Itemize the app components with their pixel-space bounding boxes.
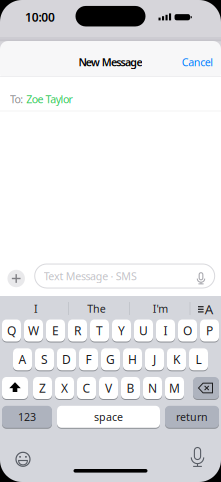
staticText: K bbox=[173, 351, 180, 367]
staticText: T bbox=[96, 322, 103, 338]
button[interactable]: return bbox=[165, 405, 219, 429]
button[interactable] bbox=[190, 269, 212, 293]
staticText: The bbox=[87, 301, 106, 316]
staticText: E bbox=[52, 322, 59, 338]
button[interactable]: H bbox=[123, 347, 142, 371]
staticText: Z bbox=[39, 380, 46, 396]
staticText: I bbox=[163, 322, 167, 338]
button[interactable]: C bbox=[77, 376, 96, 400]
staticText: O bbox=[183, 322, 192, 338]
button[interactable]: K bbox=[167, 347, 186, 371]
button[interactable]: Text Message · SMS bbox=[35, 264, 215, 288]
staticText: F bbox=[85, 351, 91, 367]
button[interactable]: To: bbox=[0, 88, 221, 110]
button[interactable]: Q bbox=[2, 318, 21, 342]
staticText: R bbox=[74, 322, 81, 338]
staticText: C bbox=[82, 380, 90, 396]
staticText: 10:00 bbox=[25, 9, 55, 25]
staticText: B bbox=[126, 380, 134, 396]
button[interactable]: T bbox=[90, 318, 109, 342]
staticText: N bbox=[148, 380, 157, 396]
staticText: return bbox=[176, 410, 208, 424]
button[interactable]: D bbox=[57, 347, 76, 371]
staticText: 123 bbox=[18, 410, 36, 424]
staticText: J bbox=[153, 351, 156, 367]
staticText: X bbox=[61, 380, 68, 396]
staticText: I'm bbox=[153, 301, 168, 316]
button[interactable]: V bbox=[99, 376, 118, 400]
staticText: A bbox=[205, 300, 214, 318]
button[interactable]: R bbox=[68, 318, 87, 342]
staticText: S bbox=[41, 351, 48, 367]
button[interactable]: B bbox=[121, 376, 140, 400]
button[interactable]: W bbox=[24, 318, 43, 342]
staticText: Y bbox=[118, 322, 125, 338]
button[interactable]: I'm bbox=[133, 298, 188, 318]
staticText: U bbox=[139, 322, 148, 338]
button[interactable]: X bbox=[55, 376, 74, 400]
button[interactable]: Cancel bbox=[175, 52, 219, 72]
button[interactable] bbox=[13, 449, 33, 469]
button[interactable]: U bbox=[134, 318, 153, 342]
staticText: Cancel bbox=[182, 55, 213, 69]
staticText: To: bbox=[10, 92, 23, 106]
button[interactable]: S bbox=[35, 347, 54, 371]
button[interactable] bbox=[193, 376, 219, 400]
staticText: G bbox=[106, 351, 115, 367]
button[interactable]: Z bbox=[33, 376, 52, 400]
button[interactable]: A bbox=[13, 347, 32, 371]
button[interactable]: F bbox=[79, 347, 98, 371]
staticText: A bbox=[18, 351, 26, 367]
button[interactable] bbox=[186, 448, 208, 472]
button[interactable]: E bbox=[46, 318, 65, 342]
staticText: Q bbox=[7, 322, 16, 338]
staticText: H bbox=[128, 351, 137, 367]
staticText: space bbox=[94, 410, 123, 424]
button[interactable]: I bbox=[6, 298, 66, 318]
staticText: Zoe Taylor bbox=[26, 92, 73, 106]
button[interactable]: 123 bbox=[2, 405, 52, 429]
staticText: L bbox=[195, 351, 201, 367]
staticText: M bbox=[169, 380, 180, 396]
button[interactable]: N bbox=[143, 376, 162, 400]
button[interactable]: O bbox=[178, 318, 197, 342]
button[interactable]: P bbox=[200, 318, 219, 342]
staticText: W bbox=[28, 322, 39, 338]
button[interactable]: space bbox=[57, 405, 160, 429]
button[interactable]: The bbox=[69, 298, 124, 318]
button[interactable] bbox=[7, 270, 25, 287]
staticText: Text Message · SMS bbox=[44, 269, 137, 283]
button[interactable] bbox=[2, 376, 28, 400]
button[interactable]: M bbox=[165, 376, 184, 400]
button[interactable]: Y bbox=[112, 318, 131, 342]
button[interactable]: G bbox=[101, 347, 120, 371]
staticText: P bbox=[206, 322, 213, 338]
button[interactable]: L bbox=[189, 347, 208, 371]
staticText: New Message bbox=[78, 55, 142, 69]
staticText: D bbox=[62, 351, 71, 367]
button[interactable]: A bbox=[197, 300, 215, 318]
button[interactable]: J bbox=[145, 347, 164, 371]
staticText: V bbox=[105, 380, 112, 396]
staticText: I bbox=[34, 301, 38, 316]
button[interactable]: I bbox=[156, 318, 175, 342]
